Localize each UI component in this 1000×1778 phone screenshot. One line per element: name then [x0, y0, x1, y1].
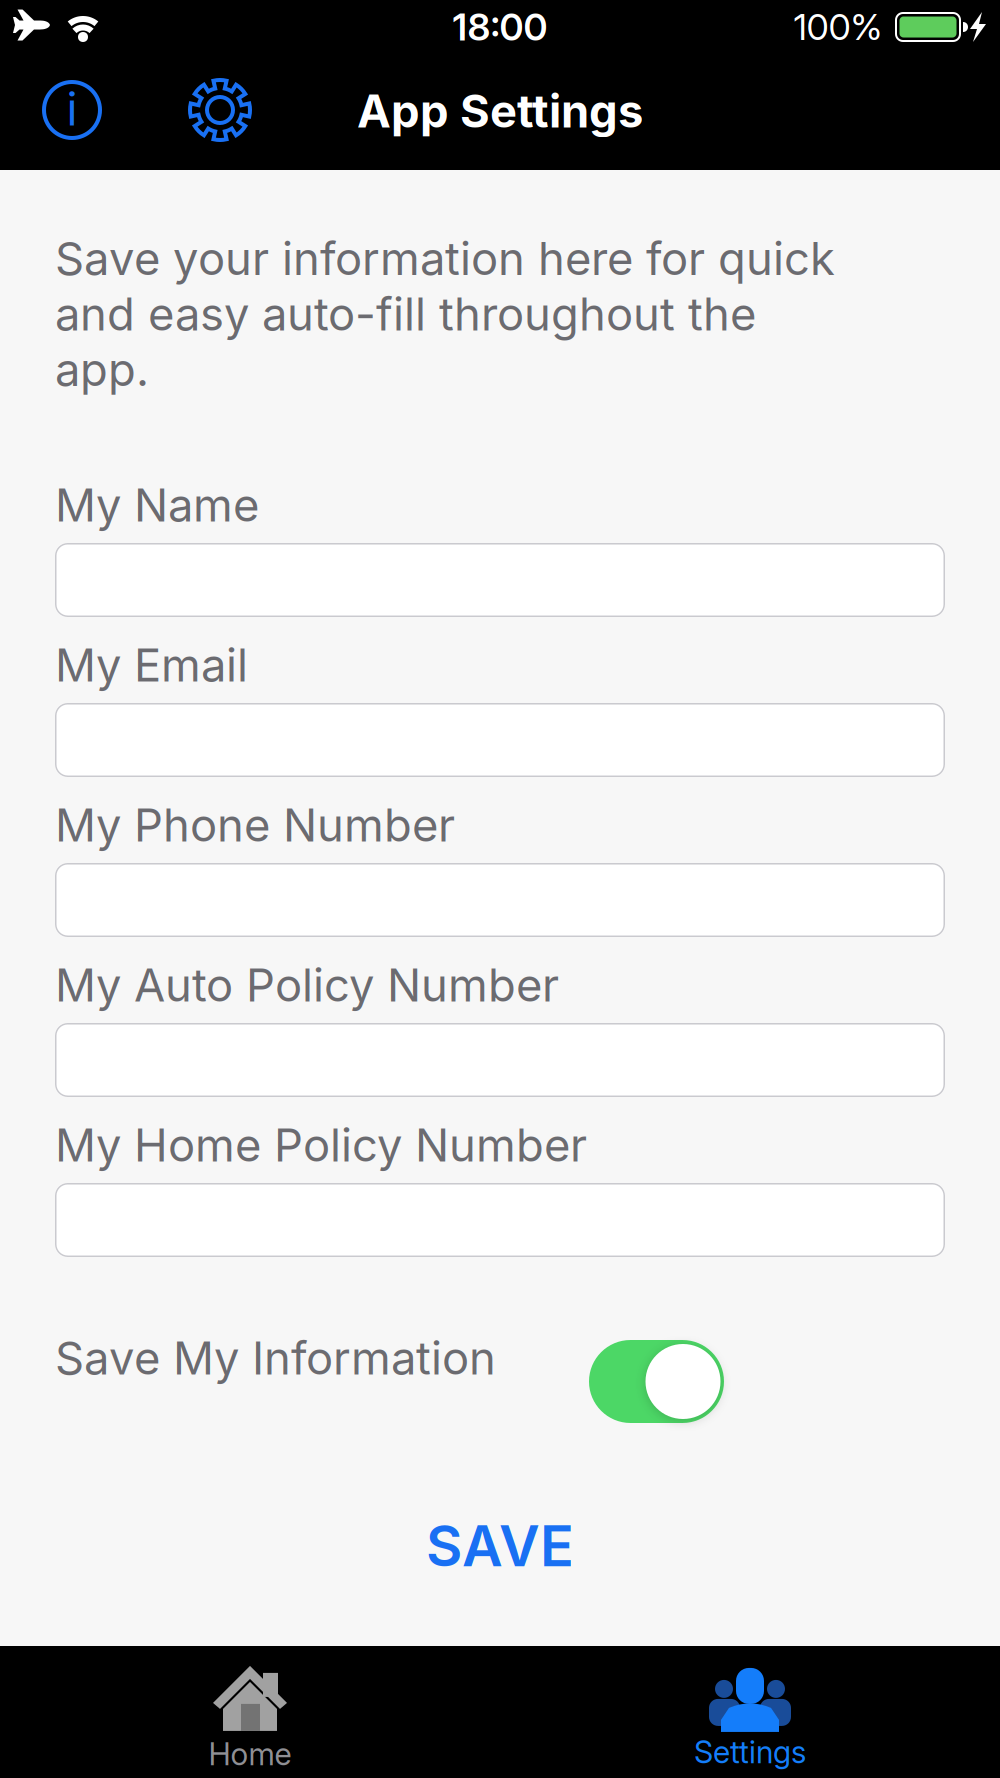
staticText: Save your information here for quick and… — [55, 232, 835, 396]
button[interactable]: Settings — [600, 1659, 900, 1778]
staticText: Settings — [694, 1734, 806, 1770]
button[interactable]: Settings — [182, 72, 258, 148]
button[interactable]: Info — [37, 75, 107, 145]
staticText: SAVE — [426, 1513, 574, 1579]
staticText: My Email — [55, 638, 248, 692]
staticText: 18:00 — [452, 5, 547, 49]
button[interactable]: My Name — [55, 543, 945, 617]
button[interactable]: My Home Policy Number — [55, 1183, 945, 1257]
staticText: Save My Information — [55, 1331, 496, 1385]
button[interactable]: My Auto Policy Number — [55, 1023, 945, 1097]
staticText: My Name — [55, 478, 259, 532]
button[interactable]: My Phone Number — [55, 863, 945, 937]
staticText: App Settings — [357, 84, 643, 138]
staticText: i — [66, 82, 77, 136]
staticText: 100% — [793, 6, 882, 48]
staticText: My Phone Number — [55, 798, 455, 852]
button[interactable]: SAVE — [426, 1513, 574, 1579]
button[interactable]: Save My Information — [589, 1340, 724, 1423]
staticText: Home — [208, 1736, 291, 1772]
staticText: My Auto Policy Number — [55, 958, 559, 1012]
staticText: My Home Policy Number — [55, 1118, 587, 1172]
button[interactable]: Home — [100, 1659, 400, 1778]
button[interactable]: My Email — [55, 703, 945, 777]
